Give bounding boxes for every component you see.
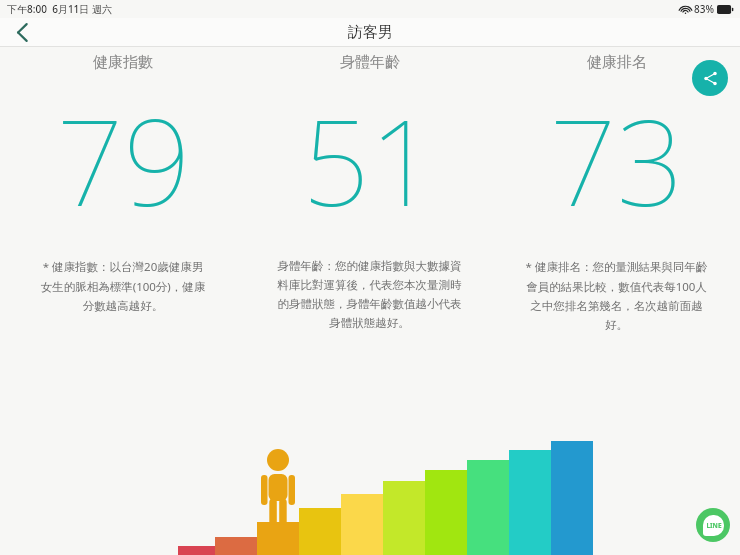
staticText: 79 [56, 80, 191, 241]
staticText: 83% [694, 2, 714, 16]
staticText: 身體年齡 [340, 53, 400, 72]
button[interactable]: Share [692, 60, 728, 96]
staticText: * 健康指數：以台灣20歲健康男女生的脈相為標準(100分)，健康分數越高越好。 [38, 259, 208, 314]
staticText: 健康排名 [587, 53, 647, 72]
staticText: 73 [549, 80, 684, 241]
staticText: 下午8:00 6月11日 週六 [7, 2, 112, 16]
staticText: 51 [302, 80, 437, 241]
staticText: 健康指數 [93, 53, 153, 72]
button[interactable]: LINE [696, 508, 730, 542]
staticText: 身體年齡：您的健康指數與大數據資料庫比對運算後，代表您本次量測時的身體狀態，身體… [276, 259, 463, 331]
staticText: 訪客男 [348, 23, 393, 42]
staticText: * 健康排名：您的量測結果與同年齡會員的結果比較，數值代表每100人之中您排名第… [523, 259, 710, 333]
button[interactable]: Back [0, 18, 44, 46]
staticText: LINE [706, 521, 722, 530]
